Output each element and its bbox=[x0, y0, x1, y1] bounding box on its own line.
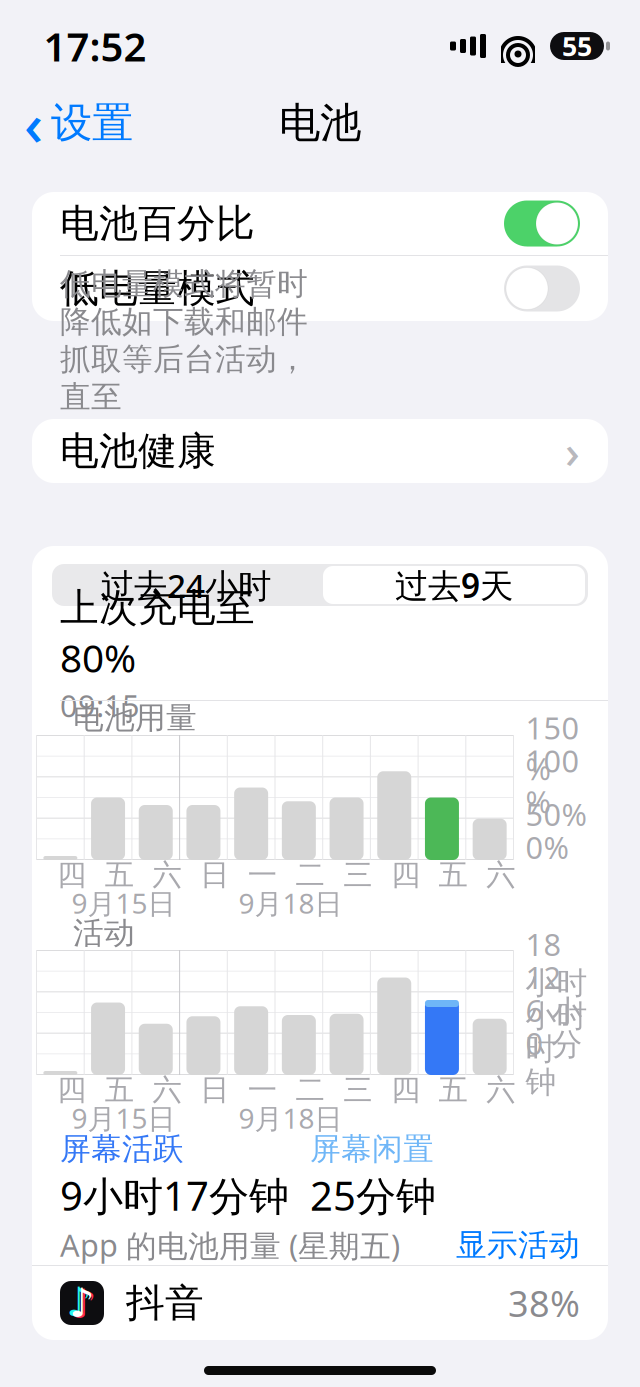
staticText: 上次充电至80% bbox=[60, 584, 255, 683]
staticText: 电池百分比 bbox=[60, 200, 255, 247]
button[interactable]: 过去9天 bbox=[323, 566, 585, 604]
staticText: iPhone 完全充电。 bbox=[60, 418, 324, 459]
staticText: 150% bbox=[525, 707, 579, 789]
staticText: 18 小时 bbox=[525, 924, 587, 1002]
staticText: 过去9天 bbox=[395, 563, 513, 607]
staticText: 五 bbox=[439, 1072, 468, 1108]
staticText: 日 bbox=[200, 857, 229, 893]
staticText: 9小时17分钟 bbox=[60, 1169, 289, 1222]
staticText: 三 bbox=[343, 1072, 372, 1108]
staticText: ♪ bbox=[66, 1279, 92, 1325]
staticText: 0 分钟 bbox=[525, 1023, 582, 1101]
staticText: 6 小时 bbox=[525, 990, 582, 1068]
staticText: 屏幕闲置 bbox=[310, 1130, 434, 1168]
staticText: 五 bbox=[439, 857, 468, 893]
staticText: 日 bbox=[200, 1072, 229, 1108]
button[interactable]: 过去24小时 bbox=[52, 564, 320, 606]
staticText: 50% bbox=[525, 794, 586, 834]
staticText: 过去24小时 bbox=[101, 563, 271, 607]
staticText: 四 bbox=[391, 1072, 420, 1108]
staticText: ♪ bbox=[69, 1280, 95, 1326]
staticText: 100% bbox=[525, 740, 579, 822]
staticText: 一 bbox=[248, 857, 277, 893]
staticText: 低电量模式将暂时降低如下载和邮件抓取等后台活动，直至 bbox=[60, 265, 308, 416]
staticText: 09:15 bbox=[60, 685, 140, 726]
staticText: 25分钟 bbox=[310, 1169, 436, 1222]
staticText: 六 bbox=[152, 857, 181, 893]
staticText: 低电量模式 bbox=[60, 265, 255, 312]
staticText: 活动 bbox=[73, 914, 135, 952]
staticText: 四 bbox=[57, 1072, 86, 1108]
staticText: 一 bbox=[248, 1072, 277, 1108]
button[interactable]: ♪ bbox=[32, 1266, 608, 1340]
staticText: 二 bbox=[295, 857, 324, 893]
staticText: 电池用量 bbox=[73, 699, 197, 737]
staticText: 六 bbox=[486, 857, 515, 893]
staticText: 五 bbox=[105, 1072, 134, 1108]
staticText: 电池健康 bbox=[60, 427, 216, 475]
staticText: 38% bbox=[508, 1279, 580, 1327]
staticText: ‹ bbox=[24, 84, 43, 162]
button[interactable]: 电池健康 bbox=[32, 419, 608, 483]
staticText: 设置 bbox=[51, 98, 133, 148]
staticText: 0% bbox=[525, 827, 568, 867]
staticText: 9月15日 bbox=[72, 1099, 176, 1137]
staticText: 电池 bbox=[279, 98, 361, 148]
staticText: 55 bbox=[562, 28, 592, 64]
button[interactable]: 显示活动 bbox=[450, 1228, 586, 1262]
button[interactable]: 电池百分比 bbox=[32, 192, 608, 255]
button[interactable]: 低电量模式 bbox=[32, 256, 608, 321]
staticText: 9月18日 bbox=[238, 1099, 342, 1137]
staticText: 五 bbox=[105, 857, 134, 893]
staticText: 9月15日 bbox=[72, 884, 176, 922]
staticText: 三 bbox=[343, 857, 372, 893]
staticText: › bbox=[565, 421, 580, 481]
staticText: 六 bbox=[152, 1072, 181, 1108]
staticText: 抖音 bbox=[126, 1279, 204, 1327]
staticText: 17:52 bbox=[43, 19, 146, 72]
staticText: 9月18日 bbox=[238, 884, 342, 922]
staticText: 屏幕活跃 bbox=[60, 1130, 184, 1168]
staticText: 二 bbox=[295, 1072, 324, 1108]
staticText: 12 小时 bbox=[525, 957, 587, 1035]
button[interactable]: ‹ bbox=[0, 92, 157, 154]
staticText: 四 bbox=[391, 857, 420, 893]
staticText: 四 bbox=[57, 857, 86, 893]
staticText: ♪ bbox=[71, 1281, 97, 1327]
staticText: 六 bbox=[486, 1072, 515, 1108]
staticText: 显示活动 bbox=[456, 1226, 580, 1264]
staticText: App 的电池用量 (星期五) bbox=[60, 1225, 400, 1265]
